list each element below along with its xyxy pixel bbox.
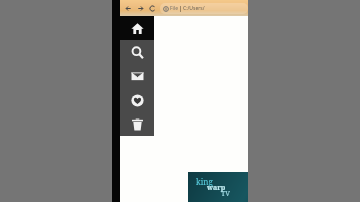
staticText: warp — [207, 183, 226, 193]
button[interactable]: Back — [122, 2, 134, 14]
button[interactable]: Search — [120, 40, 154, 64]
button[interactable]: Home — [120, 16, 154, 40]
staticText: TV — [221, 189, 231, 199]
button[interactable]: Mail — [120, 64, 154, 88]
staticText: king — [196, 176, 213, 187]
staticText: C:/Users/WISHAM%20JEWELLERY — [183, 5, 248, 12]
button[interactable]: Reload — [146, 2, 158, 14]
staticText: File — [170, 5, 178, 12]
button[interactable]: Favorites — [120, 88, 154, 112]
button[interactable]: Forward — [134, 2, 146, 14]
button[interactable]: File — [160, 3, 248, 14]
button[interactable]: king — [188, 172, 248, 202]
button[interactable]: Delete — [120, 112, 154, 136]
